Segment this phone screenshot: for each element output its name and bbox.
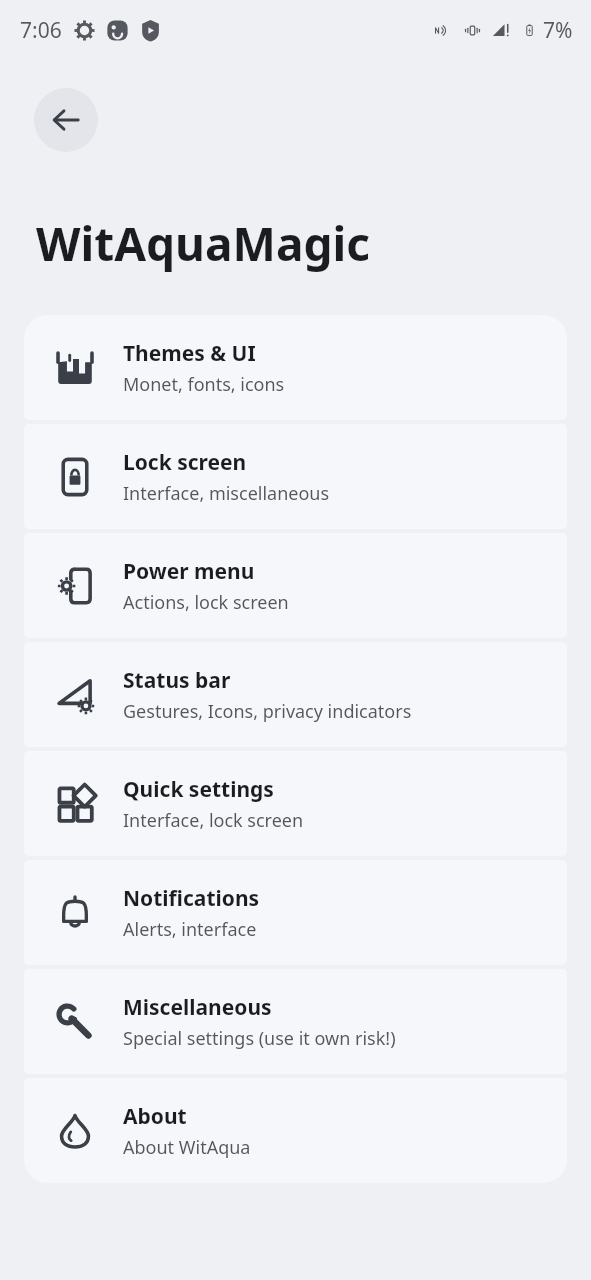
button[interactable]: Themes & UI — [24, 315, 567, 420]
staticText: Lock screen — [123, 448, 247, 477]
staticText: About WitAqua — [123, 1135, 251, 1160]
staticText: Special settings (use it own risk!) — [123, 1026, 396, 1051]
button[interactable]: Lock screen — [24, 424, 567, 529]
button[interactable]: Power menu — [24, 533, 567, 638]
button[interactable]: Miscellaneous — [24, 969, 567, 1074]
staticText: Themes & UI — [123, 339, 256, 368]
staticText: 7% — [543, 16, 573, 45]
button[interactable]: Quick settings — [24, 751, 567, 856]
staticText: Status bar — [123, 666, 231, 695]
staticText: About — [123, 1102, 187, 1131]
button[interactable]: Status bar — [24, 642, 567, 747]
staticText: Interface, miscellaneous — [123, 481, 330, 506]
staticText: Alerts, interface — [123, 917, 257, 942]
staticText: Miscellaneous — [123, 993, 272, 1022]
staticText: Interface, lock screen — [123, 808, 304, 833]
staticText: Power menu — [123, 557, 255, 586]
staticText: Monet, fonts, icons — [123, 372, 285, 397]
staticText: Notifications — [123, 884, 260, 913]
staticText: WitAquaMagic — [36, 212, 371, 275]
button[interactable]: Notifications — [24, 860, 567, 965]
staticText: Gestures, Icons, privacy indicators — [123, 699, 412, 724]
button[interactable]: Back — [34, 88, 98, 152]
staticText: Actions, lock screen — [123, 590, 289, 615]
button[interactable]: About — [24, 1078, 567, 1183]
staticText: 7:06 — [20, 16, 62, 45]
staticText: Quick settings — [123, 775, 274, 804]
